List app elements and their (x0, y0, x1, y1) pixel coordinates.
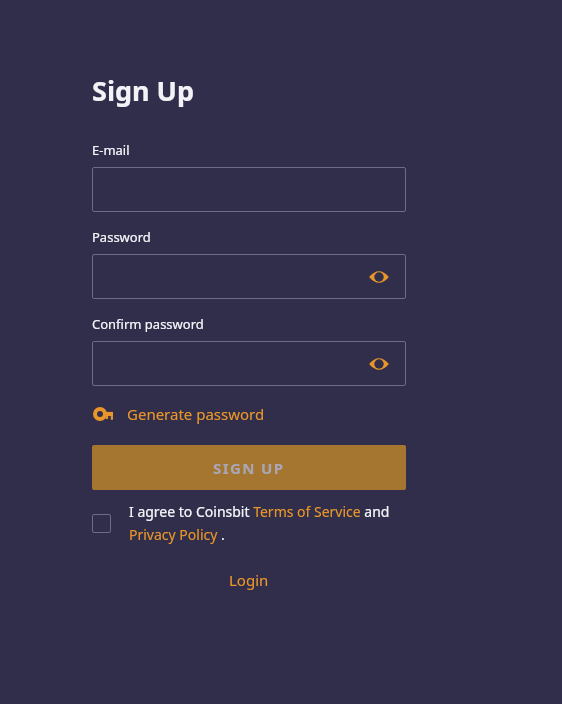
button[interactable]: Login (229, 570, 269, 590)
button[interactable]: Agree to terms checkbox (92, 514, 111, 533)
button[interactable]: Show password (92, 254, 406, 299)
button[interactable]: Show confirm password (92, 341, 406, 386)
staticText: Login (229, 570, 269, 590)
button[interactable]: SIGN UP (92, 445, 406, 490)
staticText: Sign Up (92, 72, 195, 109)
staticText: Generate password (127, 404, 265, 424)
button[interactable]: Show password (364, 262, 394, 292)
button[interactable]: Show confirm password (364, 349, 394, 379)
staticText: SIGN UP (213, 458, 285, 478)
staticText: Confirm password (92, 315, 204, 333)
button[interactable]: I agree to Coinsbit Terms of Service and… (129, 502, 406, 544)
staticText: Password (92, 228, 151, 246)
button[interactable] (92, 167, 406, 212)
staticText: E-mail (92, 141, 130, 159)
button[interactable]: Generate password (93, 404, 265, 424)
